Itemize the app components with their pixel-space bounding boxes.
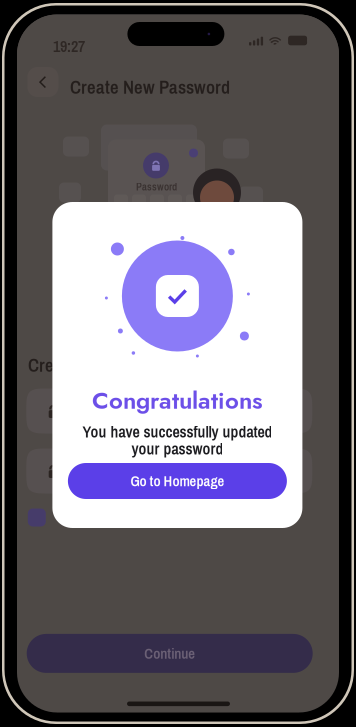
staticText: Continue bbox=[144, 643, 195, 663]
button[interactable]: Go to Homepage bbox=[68, 463, 287, 499]
staticText: Go to Homepage bbox=[130, 471, 224, 491]
staticText: 19:27 bbox=[53, 35, 85, 57]
button[interactable]: Continue bbox=[27, 634, 313, 673]
staticText: You have successfully updated bbox=[82, 421, 272, 443]
staticText: your password bbox=[131, 438, 223, 460]
staticText: Create New Password bbox=[70, 74, 230, 100]
staticText: Create New Password bbox=[28, 352, 188, 378]
button[interactable]: Back bbox=[27, 67, 58, 97]
staticText: Congratulations bbox=[92, 383, 263, 418]
staticText: Password bbox=[136, 179, 177, 194]
